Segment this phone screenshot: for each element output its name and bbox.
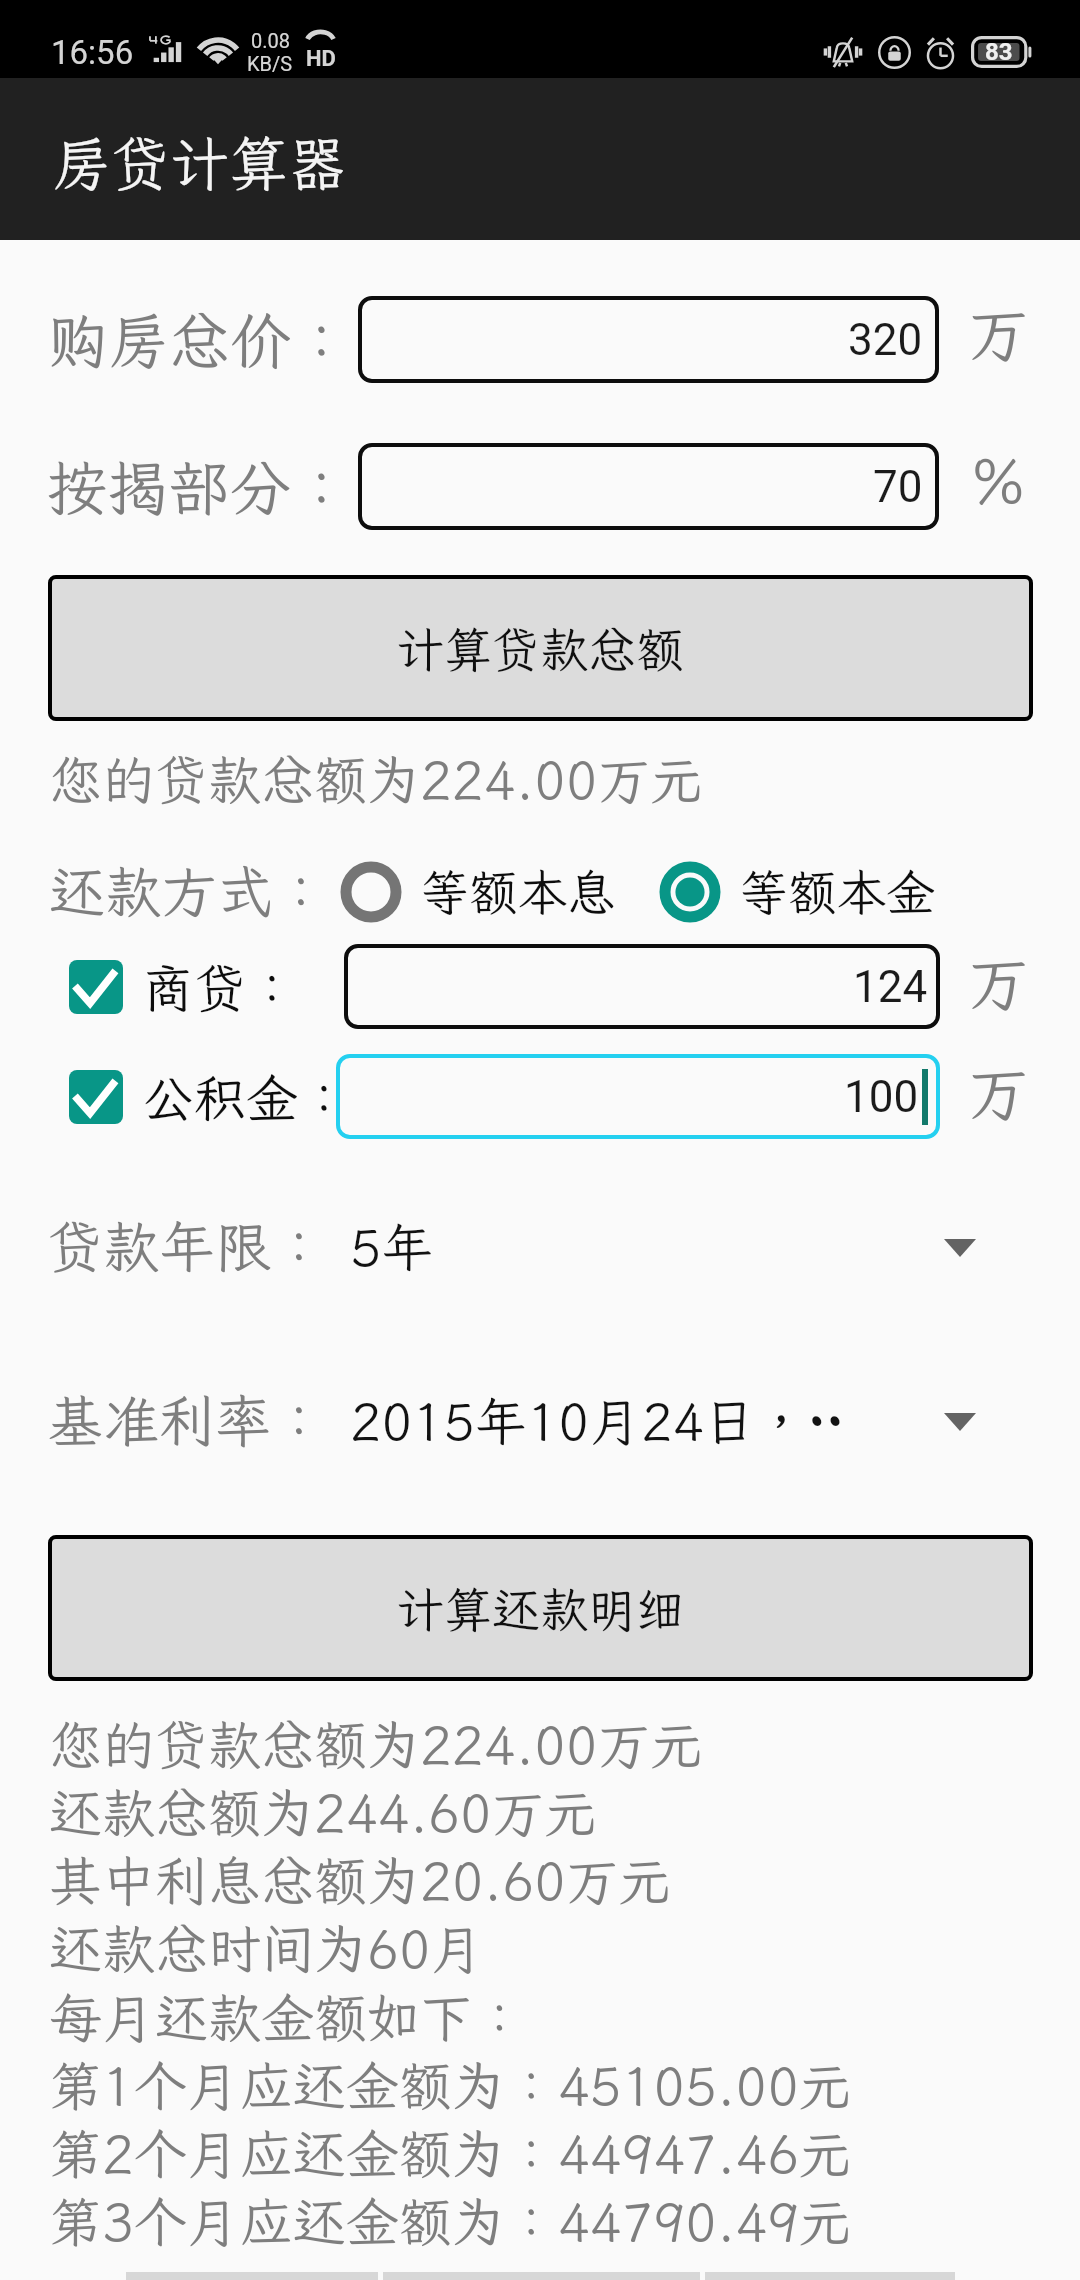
staticText: 还款方式： [49,854,329,928]
staticText: 房贷计算器 [52,124,348,202]
staticText: 320 [848,314,923,366]
staticText: 5年 [350,1212,434,1280]
staticText: 购房总价： [47,300,353,380]
staticText: 您的贷款总额为224.00万元 [49,744,704,814]
staticText: 70 [873,461,923,513]
button[interactable]: 计算贷款总额 [48,575,1033,721]
staticText: 第1个月应还金额为：45105.00元 [49,2050,852,2120]
button[interactable]: 124 [344,944,940,1029]
staticText: 2015年10月24日，·· [350,1386,845,1454]
button[interactable]: 等额本金 [659,859,936,924]
staticText: 公积金： [142,1063,351,1131]
button[interactable]: 贷款年限： [0,1206,1080,1286]
staticText: 万 [968,293,1030,373]
staticText: 商贷： [142,953,299,1021]
staticText: KB/S [247,52,293,75]
button[interactable] [69,1070,123,1124]
button[interactable] [69,960,123,1014]
staticText: 计算还款明细 [396,1577,685,1640]
button[interactable]: 100 [336,1054,940,1139]
button[interactable]: 等额本息 [340,859,617,924]
button[interactable]: 计算还款明细 [48,1535,1033,1681]
staticText: 每月还款金额如下： [49,1982,526,2052]
staticText: 等额本息 [420,859,617,924]
staticText: 83 [985,38,1013,66]
staticText: 基准利率： [47,1383,327,1457]
staticText: 100 [844,1071,919,1123]
staticText: 还款总时间为60月 [49,1913,484,1983]
staticText: 等额本金 [739,859,936,924]
staticText: 贷款年限： [47,1209,327,1283]
staticText: 第2个月应还金额为：44947.46元 [49,2118,852,2188]
staticText: 按揭部分： [47,447,353,527]
staticText: 0.08 [251,29,290,52]
button[interactable]: 基准利率： [0,1380,1080,1460]
staticText: 第3个月应还金额为：44790.49元 [49,2186,852,2256]
staticText: HD [306,46,336,72]
staticText: 16:56 [51,33,134,72]
staticText: 您的贷款总额为224.00万元 [49,1709,704,1779]
staticText: 计算贷款总额 [396,617,685,680]
staticText: 万 [968,942,1030,1022]
button[interactable]: 70 [358,443,939,530]
staticText: 其中利息总额为20.60万元 [49,1845,672,1915]
staticText: 万 [968,1052,1030,1132]
staticText: 124 [853,961,928,1013]
staticText: 还款总额为244.60万元 [49,1777,598,1847]
staticText: ％ [968,440,1030,520]
button[interactable]: 320 [358,296,939,383]
